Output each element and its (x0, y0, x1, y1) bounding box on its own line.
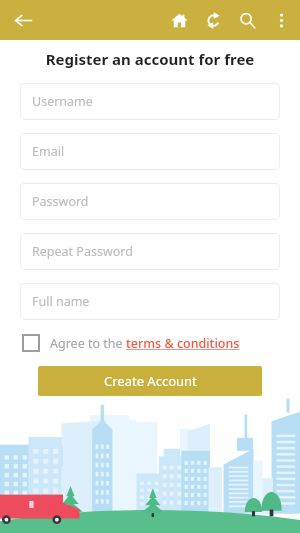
button[interactable]: Full name (20, 283, 280, 320)
button[interactable]: Repeat Password (20, 233, 280, 270)
button[interactable]: Agree to the (22, 330, 278, 356)
staticText: Password (32, 193, 89, 210)
staticText: Agree to the (50, 335, 126, 352)
staticText: Repeat Password (32, 243, 133, 260)
button[interactable]: Home (162, 3, 196, 37)
staticText: Email (32, 143, 65, 160)
button[interactable]: Back (6, 3, 40, 37)
staticText: Full name (32, 293, 90, 310)
staticText: Create Account (104, 372, 197, 390)
button[interactable]: Search (230, 3, 264, 37)
button[interactable]: Refresh (196, 3, 230, 37)
button[interactable]: More options (264, 3, 298, 37)
staticText: Register an account for free (0, 49, 300, 69)
button[interactable]: Password (20, 183, 280, 220)
button[interactable]: Email (20, 133, 280, 170)
button[interactable]: Username (20, 83, 280, 120)
staticText: Username (32, 93, 93, 110)
button[interactable]: terms & conditions (126, 335, 240, 352)
button[interactable]: Create Account (38, 366, 262, 396)
